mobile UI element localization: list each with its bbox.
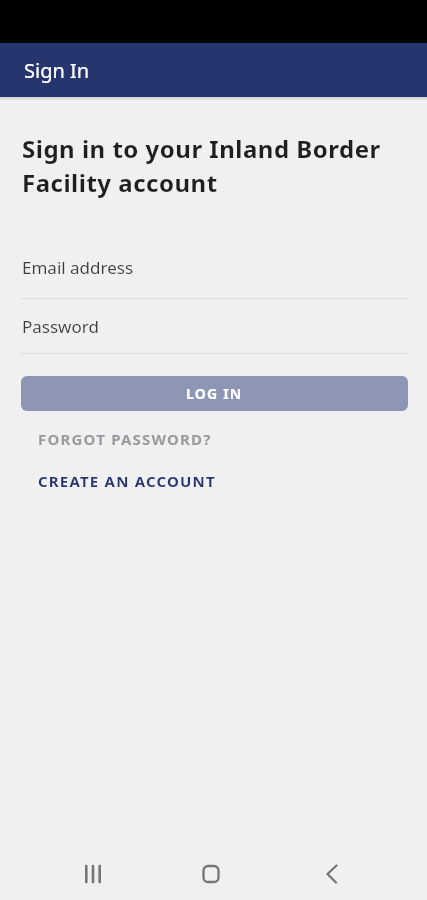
staticText: Email address (22, 256, 134, 279)
button[interactable]: CREATE AN ACCOUNT (38, 471, 216, 491)
button[interactable] (73, 854, 113, 894)
button[interactable]: Password (21, 315, 408, 338)
button[interactable]: FORGOT PASSWORD? (38, 429, 212, 449)
staticText: Sign In (24, 57, 90, 84)
button[interactable] (191, 854, 231, 894)
button[interactable]: LOG IN (21, 376, 408, 411)
staticText: FORGOT PASSWORD? (38, 429, 212, 449)
button[interactable]: Email address (21, 256, 408, 279)
staticText: CREATE AN ACCOUNT (38, 471, 216, 491)
staticText: Password (22, 315, 99, 338)
button[interactable] (312, 854, 352, 894)
staticText: LOG IN (186, 384, 243, 403)
staticText: Sign in to your Inland Border Facility a… (22, 132, 397, 199)
